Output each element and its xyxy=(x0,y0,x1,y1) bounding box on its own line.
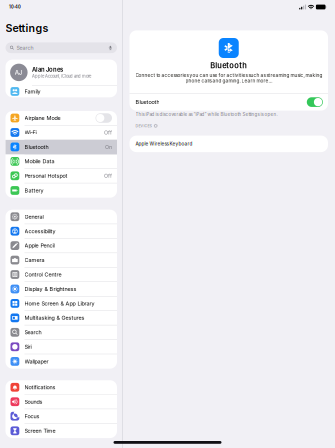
staticText: Bluetooth xyxy=(210,61,247,70)
staticText: Accessibility xyxy=(24,228,55,234)
button[interactable]: Multitasking & Gestures xyxy=(5,311,117,325)
staticText: Family xyxy=(24,88,40,95)
button[interactable]: Siri xyxy=(5,340,117,354)
staticText: Mobile Data xyxy=(24,158,54,165)
staticText: Wallpaper xyxy=(24,358,48,365)
staticText: Bluetooth xyxy=(24,144,48,150)
button[interactable]: Bluetooth xyxy=(5,140,117,154)
button[interactable]: Accessibility xyxy=(5,224,117,238)
staticText: Battery xyxy=(24,187,43,194)
staticText: Apple Pencil xyxy=(24,242,54,249)
staticText: Multitasking & Gestures xyxy=(24,315,84,321)
staticText: Connect to accessories you can use for a… xyxy=(135,73,322,84)
button[interactable]: Battery xyxy=(5,183,117,198)
button[interactable]: Focus xyxy=(5,409,117,423)
button[interactable]: Display & Brightness xyxy=(5,282,117,296)
staticText: Search xyxy=(24,329,41,336)
staticText: Wi-Fi xyxy=(24,129,36,136)
button[interactable]: AJ xyxy=(5,60,117,86)
staticText: Airplane Mode xyxy=(24,115,60,121)
button[interactable]: Notifications xyxy=(5,380,117,395)
staticText: Apple Wireless Keyboard xyxy=(135,141,192,147)
button[interactable]: Wallpaper xyxy=(5,354,117,369)
button[interactable]: Camera xyxy=(5,253,117,267)
staticText: Control Centre xyxy=(24,271,61,278)
button[interactable]: Sounds xyxy=(5,395,117,409)
staticText: Off xyxy=(104,129,112,136)
staticText: Home Screen & App Library xyxy=(24,300,94,307)
button[interactable]: General xyxy=(5,210,117,224)
button[interactable]: Home Screen & App Library xyxy=(5,296,117,311)
staticText: On xyxy=(105,144,112,150)
staticText: Bluetooth xyxy=(135,99,159,105)
staticText: Notifications xyxy=(24,384,55,390)
staticText: Search xyxy=(16,45,33,51)
staticText: Focus xyxy=(24,413,39,419)
button[interactable]: Control Centre xyxy=(5,267,117,282)
button[interactable]: Wi-Fi xyxy=(5,125,117,140)
staticText: Siri xyxy=(24,343,31,350)
button[interactable]: Bluetooth xyxy=(129,94,328,111)
staticText: Apple Account, iCloud and more xyxy=(32,74,91,79)
staticText: This iPad is discoverable as “iPad” whil… xyxy=(135,112,277,117)
button[interactable]: Search xyxy=(5,325,117,340)
staticText: Settings xyxy=(5,21,48,34)
button[interactable]: Family xyxy=(5,86,117,97)
staticText: AJ xyxy=(15,69,23,76)
staticText: Sounds xyxy=(24,398,42,405)
staticText: General xyxy=(24,213,43,220)
staticText: Off xyxy=(104,173,112,179)
staticText: Camera xyxy=(24,257,44,263)
button[interactable]: Apple Pencil xyxy=(5,239,117,253)
staticText: 10:40 xyxy=(9,4,21,9)
staticText: Screen Time xyxy=(24,428,55,434)
staticText: DEVICES xyxy=(135,124,151,128)
staticText: Alan Jones xyxy=(32,66,63,73)
button[interactable]: Search xyxy=(0,42,122,53)
button[interactable]: Mobile Data xyxy=(5,154,117,169)
button[interactable]: Apple Wireless Keyboard xyxy=(129,136,328,152)
staticText: Display & Brightness xyxy=(24,286,76,292)
button[interactable]: Airplane Mode xyxy=(5,111,117,125)
staticText: Personal Hotspot xyxy=(24,173,67,179)
button[interactable]: Screen Time xyxy=(5,424,117,438)
button[interactable]: Personal Hotspot xyxy=(5,169,117,183)
